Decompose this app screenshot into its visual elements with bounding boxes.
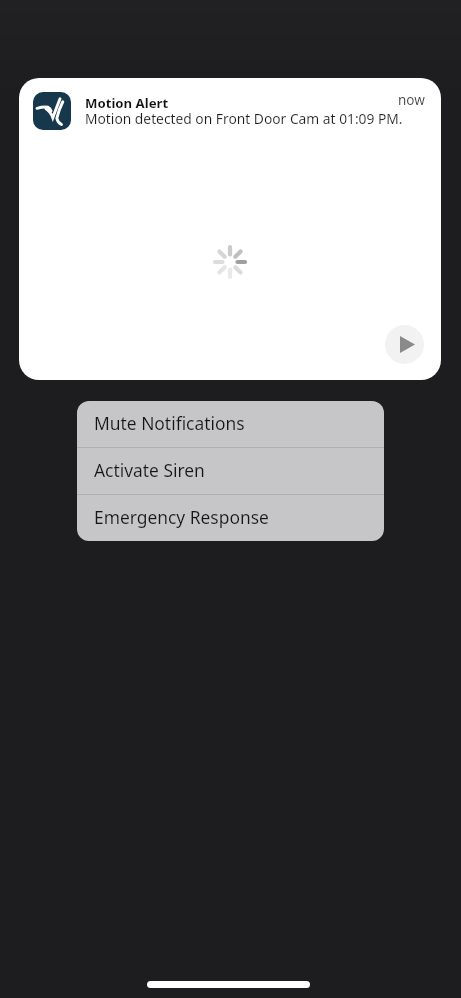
- staticText: Activate Siren: [94, 458, 205, 482]
- button[interactable]: Motion Alert: [19, 78, 441, 380]
- staticText: Motion Alert: [85, 94, 169, 112]
- staticText: Emergency Response: [94, 505, 269, 529]
- button[interactable]: Emergency Response: [77, 495, 384, 541]
- button[interactable]: [385, 325, 424, 364]
- button[interactable]: Mute Notifications: [77, 401, 384, 447]
- staticText: Motion detected on Front Door Cam at 01:…: [85, 109, 403, 128]
- staticText: now: [398, 91, 425, 109]
- button[interactable]: Activate Siren: [77, 448, 384, 494]
- staticText: Mute Notifications: [94, 411, 245, 435]
